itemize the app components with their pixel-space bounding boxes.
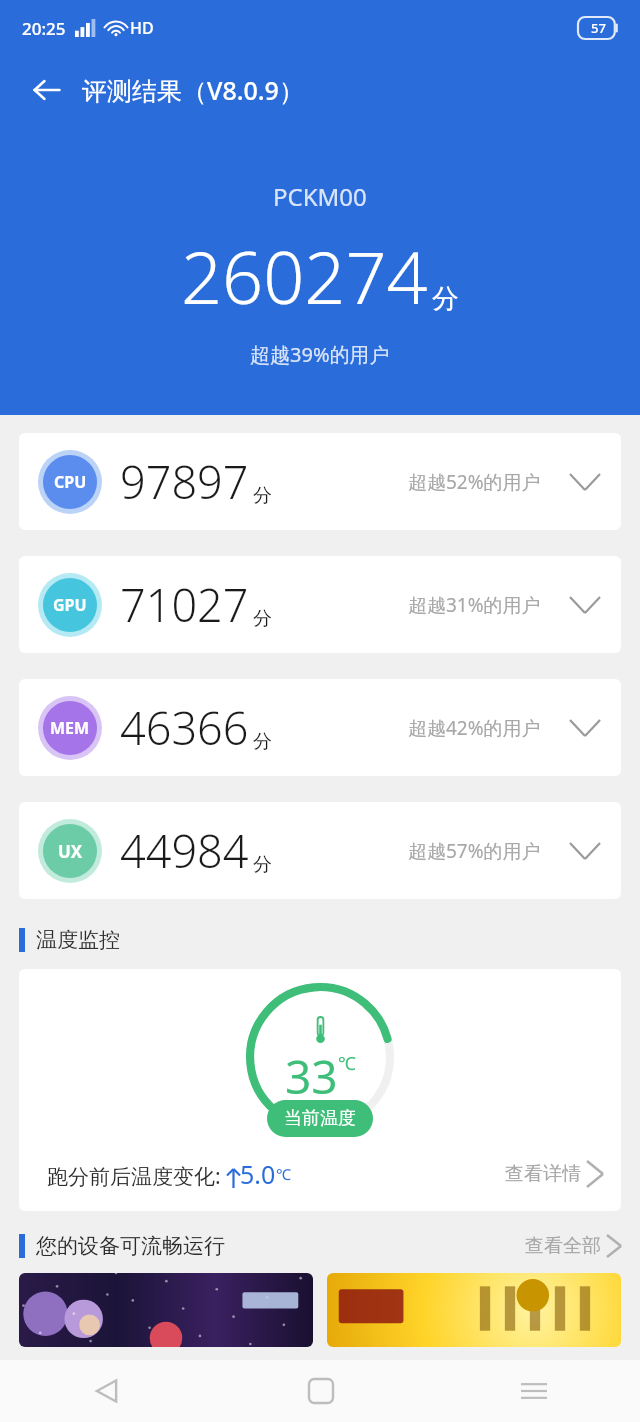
staticText: 超越39%的用户 bbox=[250, 341, 390, 368]
button[interactable] bbox=[19, 1273, 313, 1347]
staticText: 20:25 bbox=[22, 17, 66, 40]
staticText: 97897 bbox=[120, 451, 249, 512]
staticText: 分 bbox=[253, 607, 272, 631]
button[interactable]: Back bbox=[20, 64, 72, 116]
staticText: HD bbox=[130, 17, 154, 39]
button[interactable]: Expand GPU bbox=[563, 583, 607, 627]
staticText: 5.0 bbox=[240, 1157, 276, 1191]
staticText: GPU bbox=[53, 594, 87, 616]
button[interactable]: Back bbox=[0, 1360, 214, 1422]
staticText: ℃ bbox=[276, 1164, 291, 1184]
staticText: 分 bbox=[253, 730, 272, 754]
button[interactable]: GPU bbox=[19, 556, 621, 653]
staticText: ℃ bbox=[338, 1051, 356, 1076]
staticText: 超越42%的用户 bbox=[408, 715, 541, 741]
button[interactable]: Expand CPU bbox=[563, 460, 607, 504]
button[interactable]: CPU bbox=[19, 433, 621, 530]
button[interactable]: 33 bbox=[19, 969, 621, 1211]
staticText: 44984 bbox=[120, 820, 249, 881]
staticText: 分 bbox=[432, 282, 459, 316]
staticText: 超越52%的用户 bbox=[408, 469, 541, 495]
button[interactable]: Recent apps bbox=[427, 1360, 640, 1422]
button[interactable]: Home bbox=[214, 1360, 427, 1422]
staticText: 超越31%的用户 bbox=[408, 592, 541, 618]
staticText: 46366 bbox=[120, 697, 249, 758]
staticText: UX bbox=[58, 840, 83, 863]
staticText: 260274 bbox=[181, 227, 428, 325]
staticText: 评测结果（V8.0.9） bbox=[82, 73, 304, 107]
button[interactable]: MEM bbox=[19, 679, 621, 776]
staticText: PCKM00 bbox=[273, 180, 367, 213]
button[interactable]: Expand MEM bbox=[563, 706, 607, 750]
staticText: MEM bbox=[50, 717, 90, 739]
staticText: 57 bbox=[591, 19, 606, 37]
staticText: CPU bbox=[54, 471, 87, 493]
button[interactable]: UX bbox=[19, 802, 621, 899]
staticText: 温度监控 bbox=[36, 927, 120, 953]
staticText: 33 bbox=[285, 1045, 338, 1108]
button[interactable]: Expand UX bbox=[563, 829, 607, 873]
staticText: 您的设备可流畅运行 bbox=[36, 1233, 225, 1259]
staticText: 跑分前后温度变化: bbox=[47, 1162, 221, 1191]
staticText: 查看详情 bbox=[505, 1162, 581, 1186]
staticText: 查看全部 bbox=[525, 1234, 601, 1258]
button[interactable]: 查看全部 bbox=[525, 1234, 621, 1258]
button[interactable]: 查看详情 bbox=[505, 1161, 603, 1187]
staticText: 当前温度 bbox=[284, 1107, 356, 1130]
button[interactable] bbox=[327, 1273, 621, 1347]
staticText: 超越57%的用户 bbox=[408, 838, 541, 864]
staticText: 71027 bbox=[120, 574, 249, 635]
staticText: 分 bbox=[253, 853, 272, 877]
staticText: 分 bbox=[253, 484, 272, 508]
